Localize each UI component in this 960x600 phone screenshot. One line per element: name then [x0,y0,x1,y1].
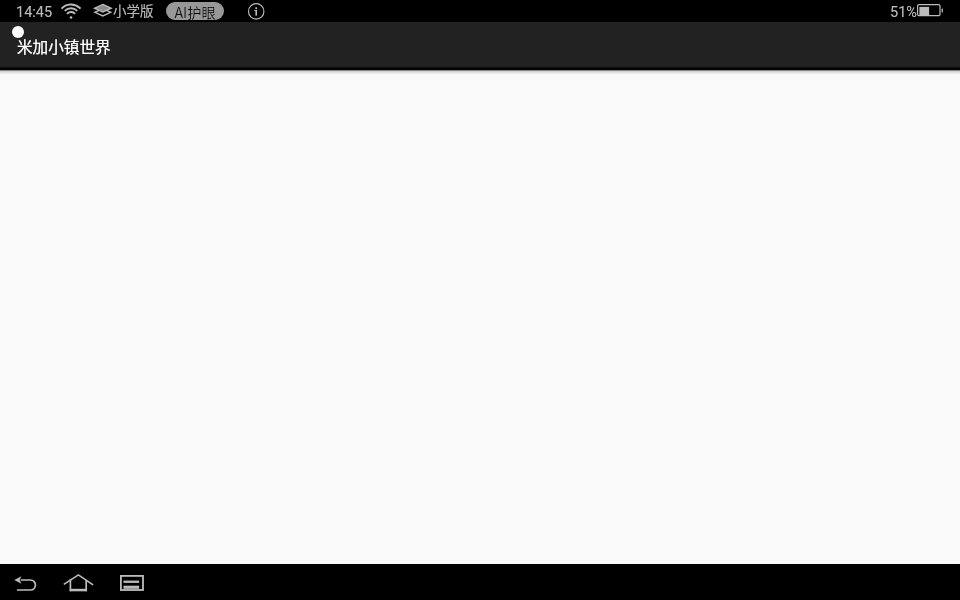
other: Grade level [94,2,113,18]
button[interactable]: Back [0,564,52,600]
other: Wi-Fi connected [62,4,82,20]
staticText: 14:45 [16,4,53,21]
staticText: AI护眼 [174,2,216,20]
button[interactable]: Recent apps [106,564,158,600]
staticText: 米加小镇世界 [17,35,111,58]
staticText: 51% [890,4,917,21]
button[interactable]: AI护眼 [166,2,224,20]
button[interactable]: Home [52,564,106,600]
staticText: 小学版 [113,0,154,20]
